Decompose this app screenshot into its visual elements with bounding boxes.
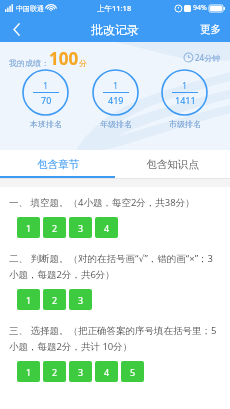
button[interactable]: 1: [17, 361, 40, 382]
staticText: 5: [130, 366, 136, 378]
staticText: 本班排名: [30, 119, 62, 129]
staticText: 一、 填空题。（4小题，每空2分，共38分）: [9, 196, 221, 209]
staticText: 2: [52, 366, 58, 378]
button[interactable]: 2: [43, 361, 66, 382]
staticText: 包含知识点: [146, 158, 199, 171]
staticText: 分: [79, 58, 87, 68]
staticText: 4: [104, 366, 110, 378]
staticText: 4: [104, 222, 110, 234]
button[interactable]: 4: [95, 217, 118, 238]
button[interactable]: 更多: [191, 16, 230, 42]
button[interactable]: 3: [69, 361, 92, 382]
staticText: 1: [26, 294, 32, 306]
staticText: 2: [52, 294, 58, 306]
staticText: 24分钟: [195, 52, 221, 63]
button[interactable]: 1: [17, 289, 40, 310]
button[interactable]: 2: [43, 217, 66, 238]
staticText: 我的成绩：: [9, 58, 49, 68]
staticText: 批改记录: [91, 22, 139, 37]
staticText: 2: [52, 222, 58, 234]
button[interactable]: 4: [95, 361, 118, 382]
staticText: 419: [108, 94, 124, 106]
staticText: 1411: [175, 94, 196, 106]
staticText: 市级排名: [169, 119, 201, 129]
staticText: 中国联通: [16, 4, 44, 13]
staticText: 年级排名: [100, 119, 132, 129]
button[interactable]: 5: [121, 361, 144, 382]
staticText: 1: [26, 366, 32, 378]
button[interactable]: Back: [0, 16, 34, 42]
staticText: 94%: [193, 3, 207, 13]
button[interactable]: 包含知识点: [115, 150, 230, 178]
staticText: 1: [182, 79, 188, 91]
staticText: 包含章节: [37, 158, 79, 171]
button[interactable]: 3: [69, 217, 92, 238]
staticText: 3: [78, 222, 84, 234]
staticText: 70: [41, 94, 52, 106]
staticText: 3: [78, 294, 84, 306]
staticText: 二、 判断题。（对的在括号画“√”，错的画“×”；3小题，每题2分，共6分）: [9, 252, 221, 281]
staticText: 3: [78, 366, 84, 378]
staticText: 1: [43, 79, 49, 91]
button[interactable]: 1: [17, 217, 40, 238]
staticText: 三、 选择题。（把正确答案的序号填在括号里；5小题，每题2分，共计 10分）: [9, 324, 221, 353]
staticText: 1: [113, 79, 119, 91]
staticText: 上午11:18: [97, 3, 132, 13]
button[interactable]: 包含章节: [0, 150, 115, 178]
button[interactable]: 2: [43, 289, 66, 310]
staticText: 100: [49, 47, 79, 70]
staticText: 更多: [200, 23, 221, 36]
button[interactable]: 3: [69, 289, 92, 310]
staticText: 1: [26, 222, 32, 234]
